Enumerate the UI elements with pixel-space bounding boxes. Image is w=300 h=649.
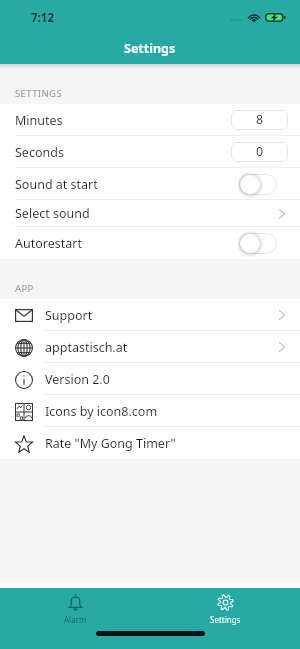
other: Alarm (69, 594, 82, 611)
staticText: SETTINGS (15, 87, 63, 100)
staticText: Settings (210, 614, 241, 625)
button[interactable]: Settings (150, 588, 300, 625)
button[interactable]: Select sound (0, 200, 300, 227)
button[interactable]: Rate "My Gong Timer" (0, 427, 300, 459)
other: Settings (217, 594, 234, 611)
button[interactable]: Icons by icon8.com (0, 395, 300, 427)
staticText: Version 2.0 (45, 371, 110, 388)
staticText: Sound at start (15, 176, 98, 193)
staticText: 7:12 (31, 10, 54, 26)
button[interactable]: Support (0, 299, 300, 331)
staticText: APP (15, 282, 34, 295)
button[interactable]: apptastisch.at (0, 331, 300, 363)
staticText: Minutes (15, 112, 63, 129)
staticText: 0 (256, 143, 264, 160)
staticText: Settings (124, 40, 176, 57)
button[interactable]: Version 2.0 (0, 363, 300, 395)
button[interactable]: Alarm (0, 588, 150, 625)
staticText: Seconds (15, 144, 64, 161)
staticText: Select sound (15, 205, 90, 222)
staticText: apptastisch.at (45, 339, 128, 356)
staticText: Rate "My Gong Timer" (45, 435, 176, 452)
staticText: 8 (256, 111, 264, 128)
button[interactable]: Seconds (0, 136, 300, 168)
staticText: Alarm (64, 614, 87, 625)
button[interactable]: Autorestart (0, 227, 300, 259)
staticText: Autorestart (15, 235, 82, 252)
button[interactable]: Minutes (0, 104, 300, 136)
staticText: Icons by icon8.com (45, 403, 158, 420)
staticText: Support (45, 307, 93, 324)
button[interactable]: Sound at start (0, 168, 300, 200)
